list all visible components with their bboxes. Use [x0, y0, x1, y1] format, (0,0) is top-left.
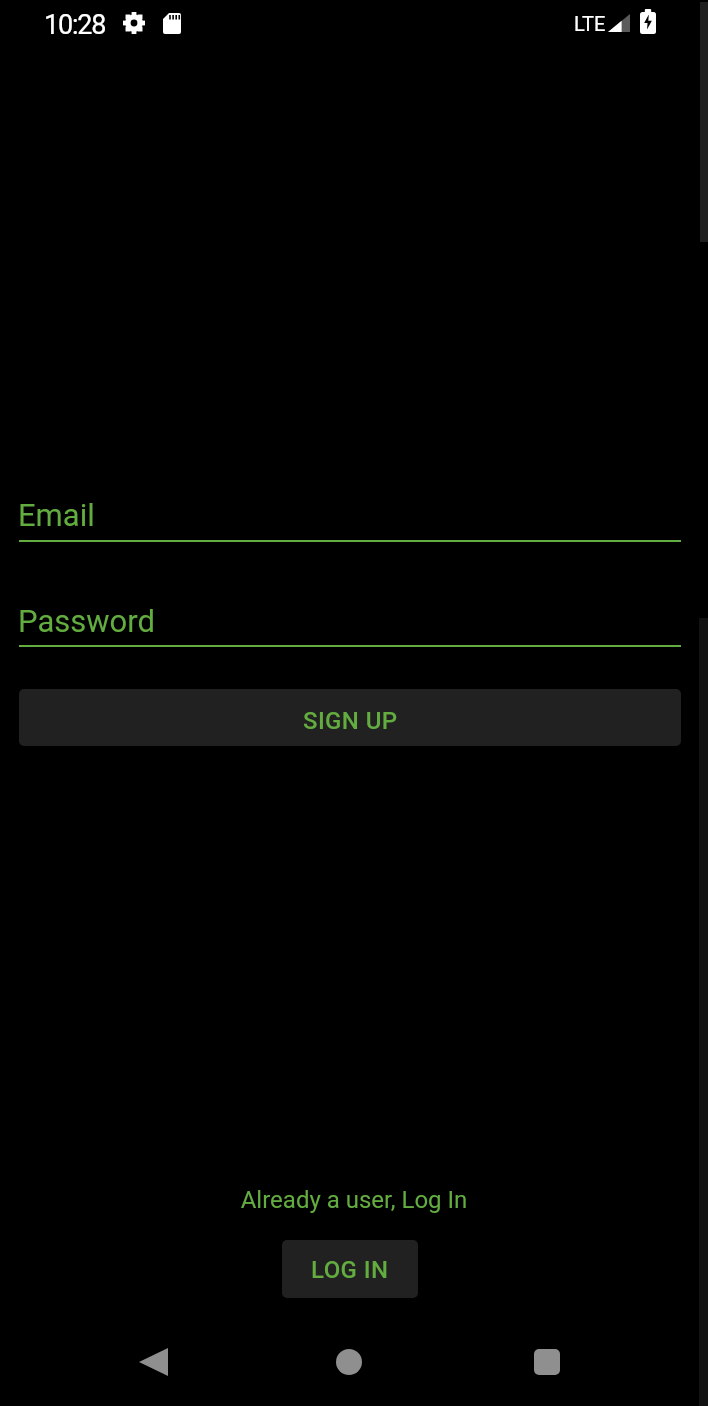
button[interactable]: SIGN UP [19, 689, 681, 746]
staticText: SIGN UP [303, 707, 398, 735]
button[interactable] [336, 1349, 362, 1375]
button[interactable] [534, 1349, 560, 1375]
button[interactable] [139, 1348, 168, 1376]
staticText: LOG IN [311, 1256, 389, 1284]
staticText: Password [18, 603, 155, 639]
staticText: Email [18, 497, 95, 533]
button[interactable]: LOG IN [282, 1240, 418, 1298]
button[interactable]: Already a user, Log In [0, 1186, 708, 1214]
staticText: 10:28 [44, 9, 106, 41]
staticText: LTE [574, 12, 606, 35]
